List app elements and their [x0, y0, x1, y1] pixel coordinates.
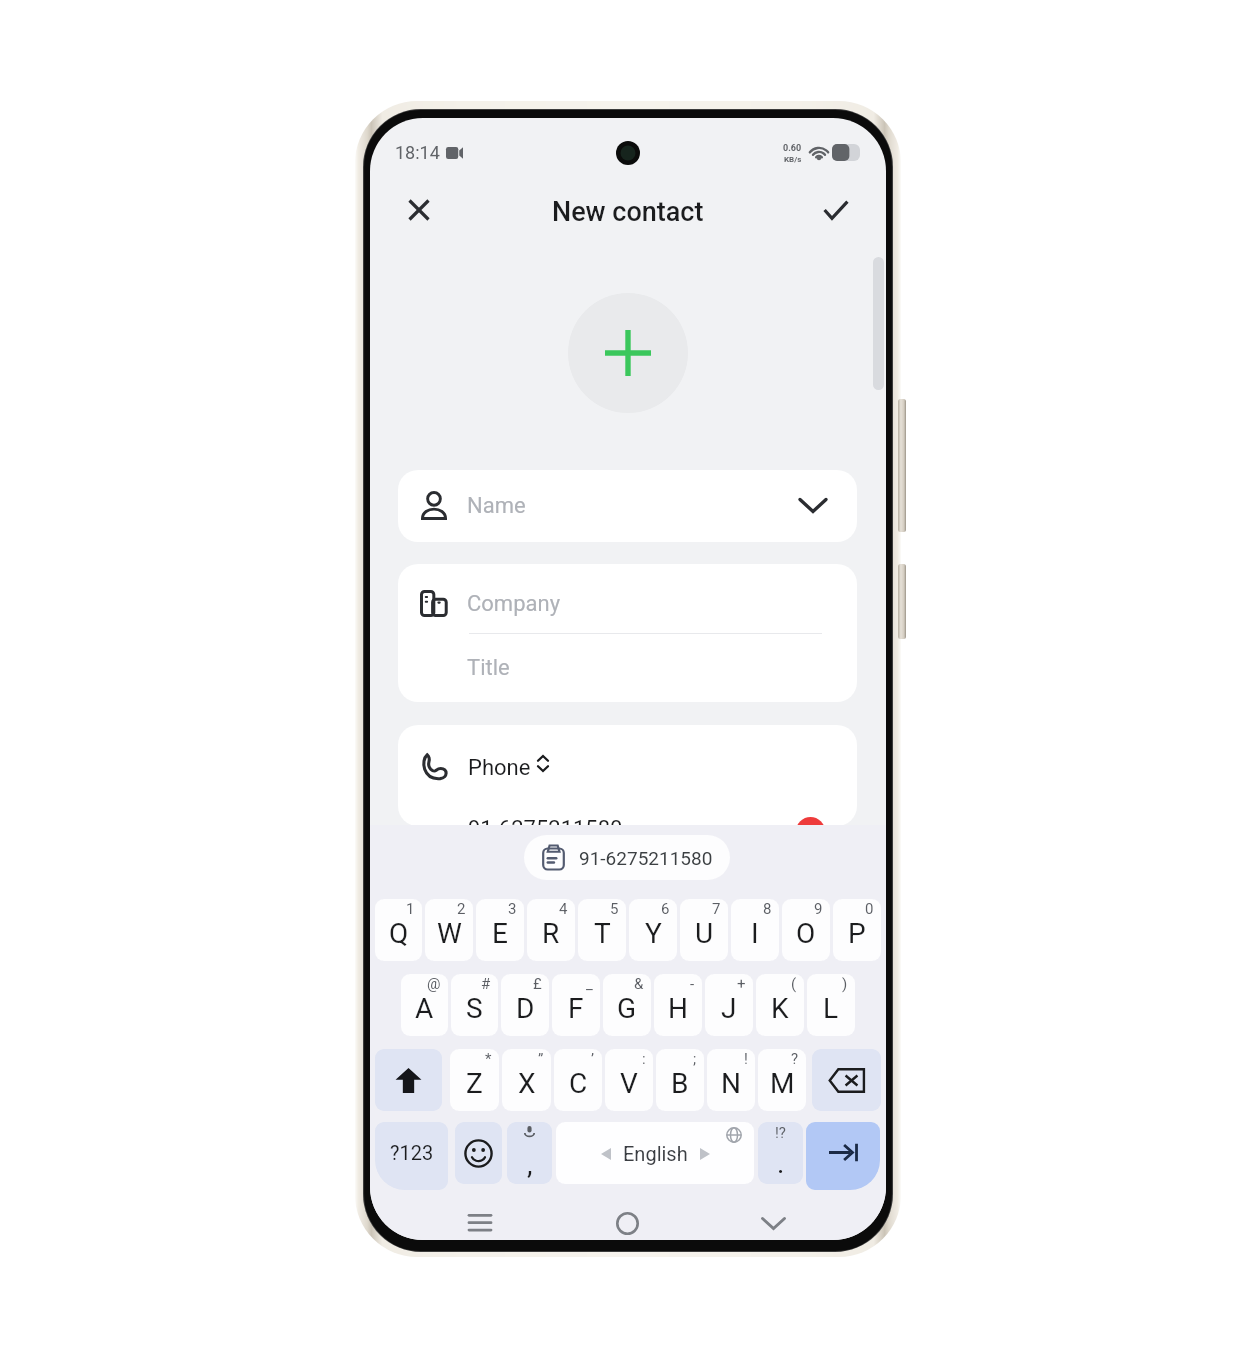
staticText: Name — [467, 493, 526, 519]
staticText: W — [437, 917, 462, 950]
button[interactable]: Title — [398, 634, 857, 702]
staticText: , — [527, 1148, 533, 1181]
staticText: L — [823, 992, 839, 1025]
staticText: 8 — [763, 900, 772, 918]
button[interactable]: ’ — [554, 1049, 602, 1111]
button[interactable]: # — [451, 974, 498, 1036]
button[interactable]: ; — [656, 1049, 704, 1111]
button[interactable]: Close — [390, 181, 447, 238]
staticText: I — [751, 917, 759, 950]
staticText: 3 — [508, 900, 517, 918]
button[interactable]: 0 — [833, 899, 881, 961]
staticText: # — [481, 975, 491, 993]
button[interactable]: : — [605, 1049, 653, 1111]
button[interactable]: £ — [501, 974, 549, 1036]
staticText: G — [617, 992, 637, 1025]
staticText: V — [620, 1067, 638, 1100]
button[interactable]: ?123 — [375, 1122, 448, 1190]
staticText: New contact — [552, 196, 704, 228]
staticText: S — [466, 992, 483, 1025]
staticText: M — [770, 1067, 795, 1100]
button[interactable]: @ — [401, 974, 448, 1036]
staticText: : — [642, 1050, 646, 1068]
button[interactable]: Shift — [375, 1049, 442, 1111]
staticText: English — [623, 1142, 688, 1165]
button[interactable]: 9 — [782, 899, 830, 961]
staticText: 2 — [457, 900, 466, 918]
staticText: 0 — [865, 900, 874, 918]
button[interactable]: 91-6275211580 — [524, 835, 730, 880]
button[interactable]: 6 — [629, 899, 677, 961]
staticText: Q — [389, 917, 409, 950]
staticText: N — [721, 1067, 741, 1100]
staticText: £ — [533, 975, 542, 993]
staticText: 91-6275211580 — [579, 847, 713, 869]
button[interactable]: 1 — [375, 899, 422, 961]
staticText: . — [777, 1147, 785, 1180]
staticText: KB/s — [784, 155, 802, 164]
staticText: & — [634, 975, 644, 993]
staticText: B — [671, 1067, 689, 1100]
button[interactable]: Company — [398, 564, 857, 633]
staticText: Phone — [468, 755, 531, 781]
button[interactable]: ” — [502, 1049, 551, 1111]
button[interactable]: 4 — [527, 899, 575, 961]
staticText: 9 — [814, 900, 823, 918]
staticText: U — [695, 917, 714, 950]
button[interactable]: Next field — [806, 1122, 880, 1190]
button[interactable]: - — [654, 974, 702, 1036]
button[interactable]: Name — [398, 470, 857, 542]
staticText: 1 — [406, 900, 415, 918]
button[interactable]: Save contact — [805, 179, 866, 240]
staticText: O — [796, 917, 816, 950]
staticText: 5 — [610, 900, 619, 918]
button[interactable]: Hide keyboard — [743, 1198, 803, 1240]
staticText: ?123 — [390, 1141, 434, 1164]
button[interactable]: English — [556, 1122, 754, 1184]
staticText: A — [415, 992, 434, 1025]
staticText: X — [518, 1067, 536, 1100]
staticText: Z — [466, 1067, 483, 1100]
button[interactable]: & — [603, 974, 651, 1036]
staticText: P — [848, 917, 866, 950]
button[interactable]: Add photo — [568, 293, 688, 413]
staticText: C — [569, 1067, 588, 1100]
button[interactable]: Home — [597, 1198, 657, 1240]
button[interactable]: 7 — [680, 899, 728, 961]
staticText: J — [721, 992, 737, 1025]
button[interactable]: 5 — [578, 899, 626, 961]
button[interactable]: Phone — [398, 725, 857, 799]
staticText: Y — [645, 917, 662, 950]
staticText: _ — [586, 975, 593, 993]
button[interactable]: 2 — [425, 899, 473, 961]
staticText: - — [690, 975, 695, 993]
button[interactable]: ? — [758, 1049, 806, 1111]
button[interactable]: + — [705, 974, 753, 1036]
button[interactable]: ) — [807, 974, 855, 1036]
button[interactable]: !? — [758, 1122, 803, 1184]
staticText: Title — [467, 655, 510, 681]
staticText: E — [492, 917, 508, 950]
button[interactable]: * — [450, 1049, 499, 1111]
button[interactable]: Backspace — [812, 1049, 881, 1111]
staticText: @ — [427, 975, 441, 993]
staticText: R — [542, 917, 560, 950]
button[interactable]: Emoji — [455, 1122, 502, 1184]
staticText: + — [737, 975, 746, 993]
staticText: ’ — [591, 1050, 595, 1068]
staticText: Company — [467, 591, 561, 617]
staticText: D — [516, 992, 535, 1025]
button[interactable]: 3 — [476, 899, 524, 961]
button[interactable]: ( — [756, 974, 804, 1036]
button[interactable]: _ — [552, 974, 600, 1036]
staticText: ” — [538, 1050, 544, 1068]
staticText: ) — [842, 975, 848, 993]
staticText: ( — [791, 975, 797, 993]
button[interactable]: Recents — [450, 1198, 510, 1240]
button[interactable]: 8 — [731, 899, 779, 961]
staticText: F — [568, 992, 584, 1025]
staticText: 4 — [559, 900, 568, 918]
staticText: !? — [775, 1124, 786, 1142]
button[interactable]: , — [507, 1122, 552, 1184]
button[interactable]: ! — [707, 1049, 755, 1111]
